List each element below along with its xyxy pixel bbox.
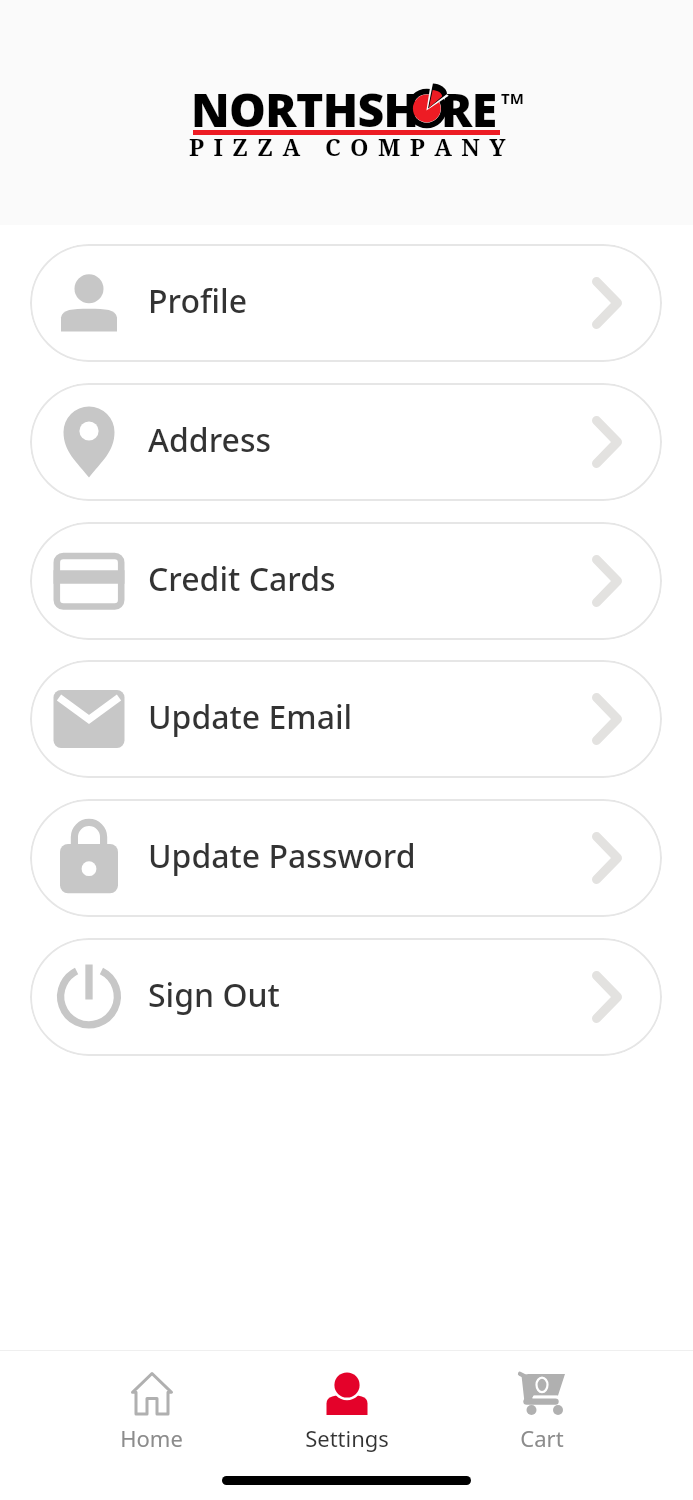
staticText: Profile xyxy=(148,279,248,323)
button[interactable]: Settings xyxy=(249,1351,444,1475)
staticText: Home xyxy=(120,1423,183,1453)
staticText: Cart xyxy=(520,1423,564,1453)
button[interactable]: Update Email xyxy=(30,660,662,778)
staticText: Update Password xyxy=(148,834,416,878)
staticText: NORTHSH RE xyxy=(191,78,496,141)
staticText: Address xyxy=(148,418,272,462)
button[interactable]: Update Password xyxy=(30,799,662,917)
staticText: TM xyxy=(501,88,524,108)
button[interactable]: Cart xyxy=(444,1351,639,1475)
button[interactable]: Sign Out xyxy=(30,938,662,1056)
button[interactable]: Credit Cards xyxy=(30,522,662,640)
button[interactable]: Address xyxy=(30,383,662,501)
button[interactable]: Profile xyxy=(30,244,662,362)
staticText: Settings xyxy=(305,1423,389,1453)
staticText: Update Email xyxy=(148,695,353,739)
staticText: Sign Out xyxy=(148,973,280,1017)
button[interactable]: Home xyxy=(54,1351,249,1475)
staticText: P I Z Z A C O M P A N Y xyxy=(189,131,508,162)
staticText: Credit Cards xyxy=(148,557,336,601)
